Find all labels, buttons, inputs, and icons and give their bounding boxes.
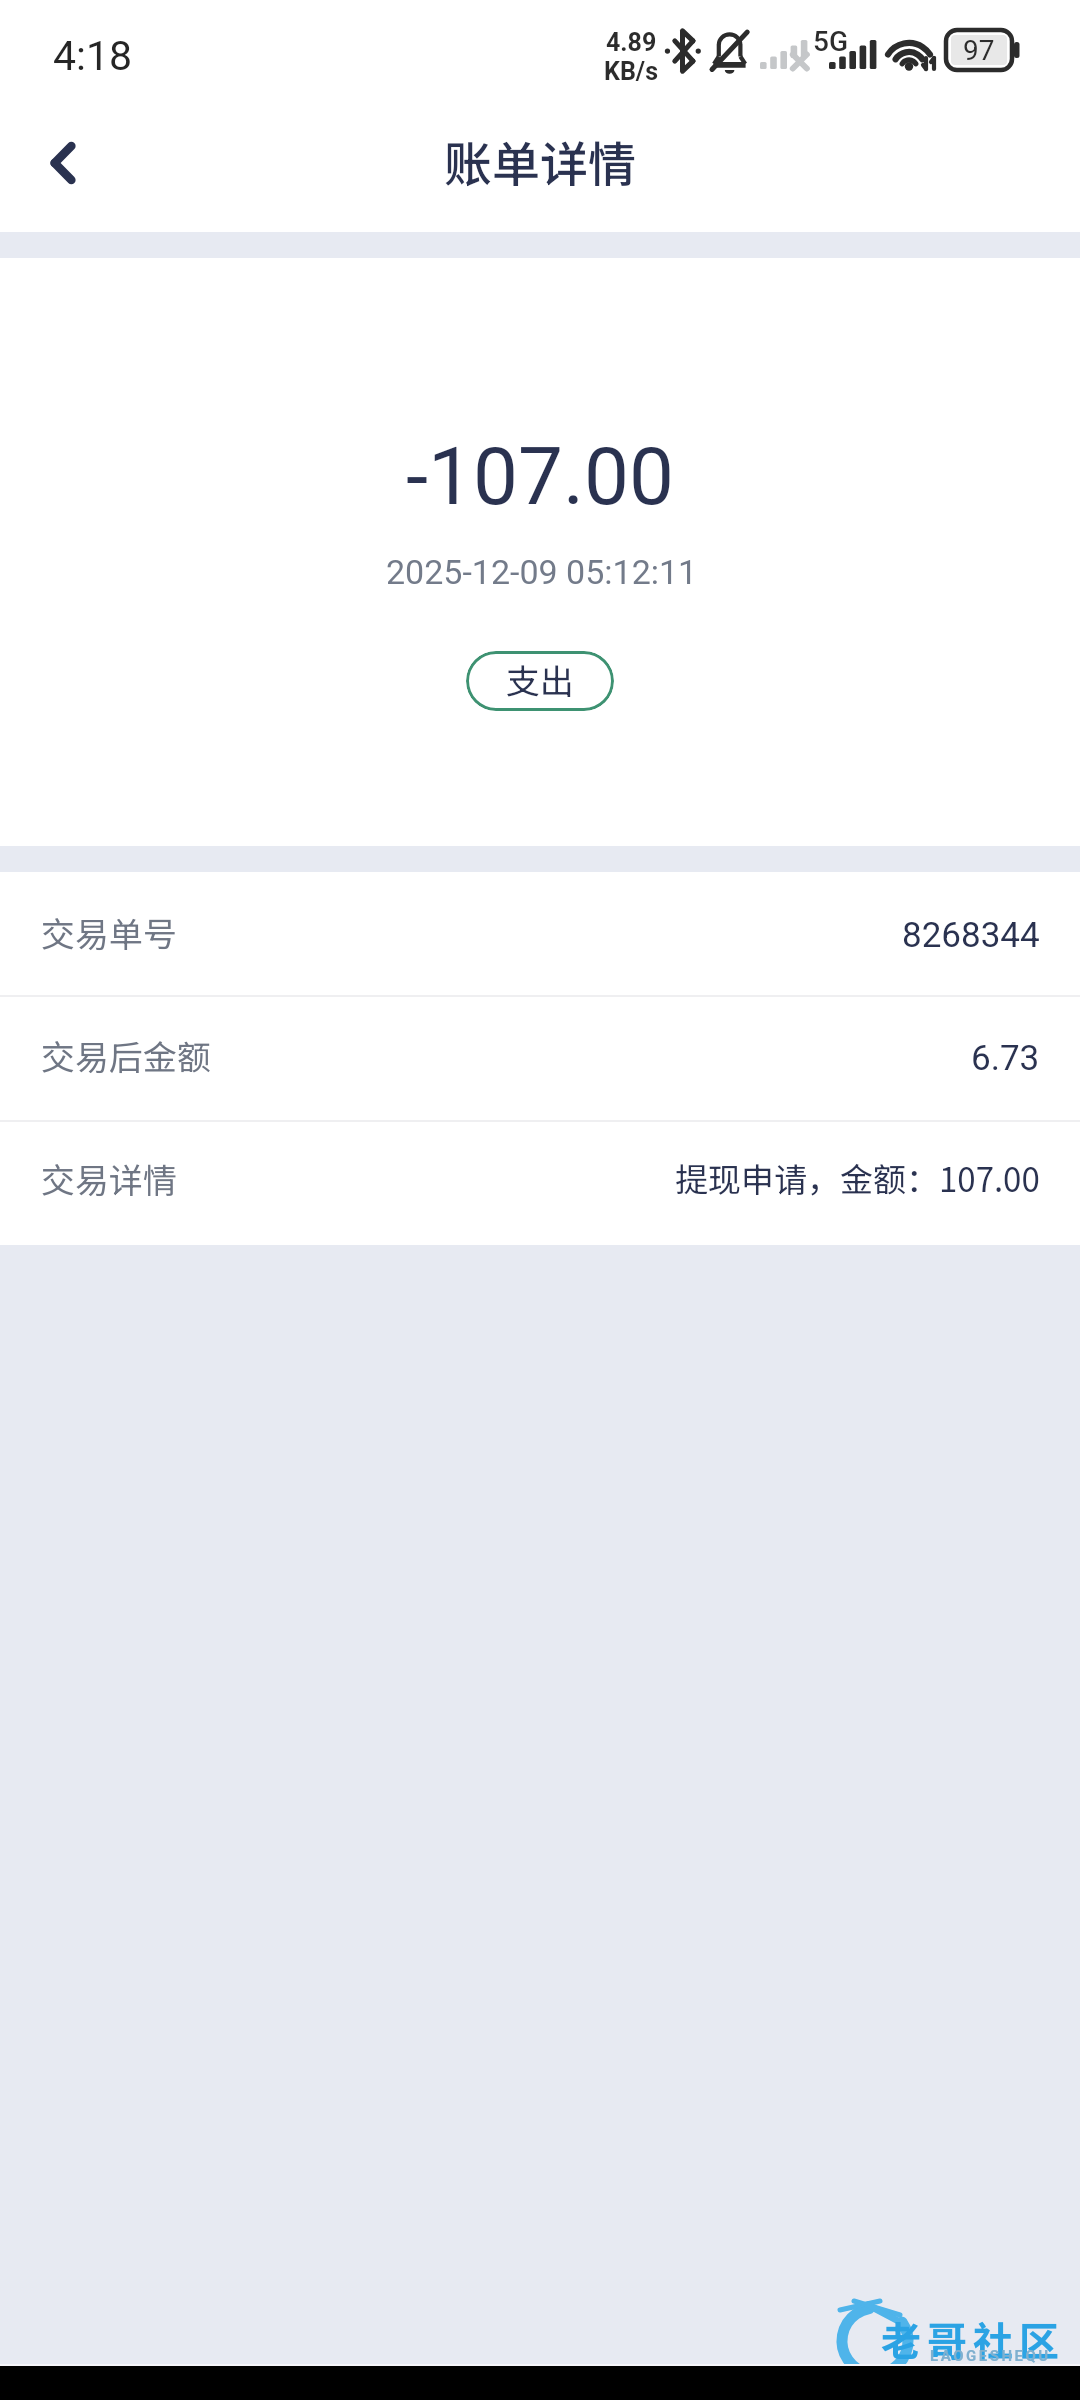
staticText: 提现申请，金额：107.00 [675, 1154, 1040, 1202]
staticText: 6.73 [971, 1038, 1040, 1079]
staticText: 8268344 [902, 915, 1040, 956]
staticText: 交易后金额 [41, 1031, 211, 1080]
button[interactable]: 支出 [466, 651, 614, 711]
staticText: LAOGESHEQU [930, 2347, 1051, 2365]
staticText: 97 [963, 34, 995, 67]
staticText: KB/s [604, 57, 658, 86]
staticText: 支出 [506, 655, 574, 704]
staticText: 账单详情 [444, 126, 637, 196]
staticText: 5G [813, 25, 848, 58]
staticText: 交易单号 [41, 908, 177, 957]
button[interactable]: 交易单号 [0, 872, 1080, 995]
staticText: -107.00 [406, 430, 675, 524]
staticText: 2025-12-09 05:12:11 [386, 552, 698, 592]
button[interactable]: Back [0, 102, 126, 223]
staticText: 交易详情 [41, 1154, 177, 1203]
staticText: 老哥社区 [881, 2310, 1065, 2368]
staticText: 4.89 [606, 28, 657, 57]
button[interactable]: 交易后金额 [0, 997, 1080, 1120]
staticText: 4:18 [53, 32, 133, 80]
button[interactable]: 交易详情 [0, 1122, 1080, 1245]
